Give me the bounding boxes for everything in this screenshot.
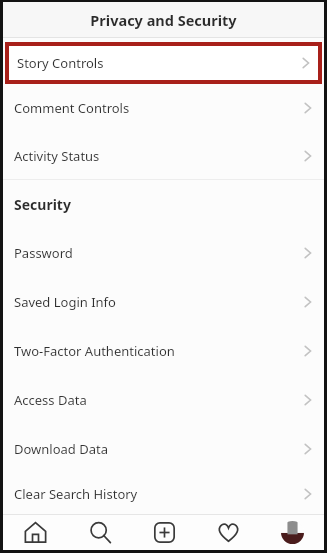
staticText: Privacy and Security (90, 10, 237, 30)
staticText: Clear Search History (14, 485, 138, 503)
staticText: Access Data (14, 391, 87, 409)
button[interactable]: Create new post (132, 515, 196, 550)
button[interactable]: Home (3, 515, 68, 550)
staticText: Story Controls (17, 54, 104, 72)
staticText: Security (14, 195, 71, 214)
button[interactable]: Search (68, 515, 132, 550)
staticText: Download Data (14, 440, 109, 458)
button[interactable]: Saved Login Info (3, 277, 324, 326)
staticText: Two-Factor Authentication (14, 342, 175, 360)
button[interactable]: Activity Status (3, 132, 324, 179)
button[interactable]: Two-Factor Authentication (3, 326, 324, 375)
staticText: Comment Controls (14, 99, 130, 117)
staticText: Password (14, 244, 73, 262)
button[interactable]: Profile (260, 515, 324, 550)
button[interactable]: Download Data (3, 424, 324, 473)
button[interactable]: Security (3, 180, 324, 228)
button[interactable]: Clear Search History (3, 473, 324, 514)
staticText: Activity Status (14, 147, 100, 165)
button[interactable]: Password (3, 228, 324, 277)
button[interactable]: Story Controls (9, 46, 318, 80)
button[interactable]: Activity (196, 515, 260, 550)
staticText: Saved Login Info (14, 293, 116, 311)
button[interactable]: Access Data (3, 375, 324, 424)
button[interactable]: Comment Controls (3, 84, 324, 132)
